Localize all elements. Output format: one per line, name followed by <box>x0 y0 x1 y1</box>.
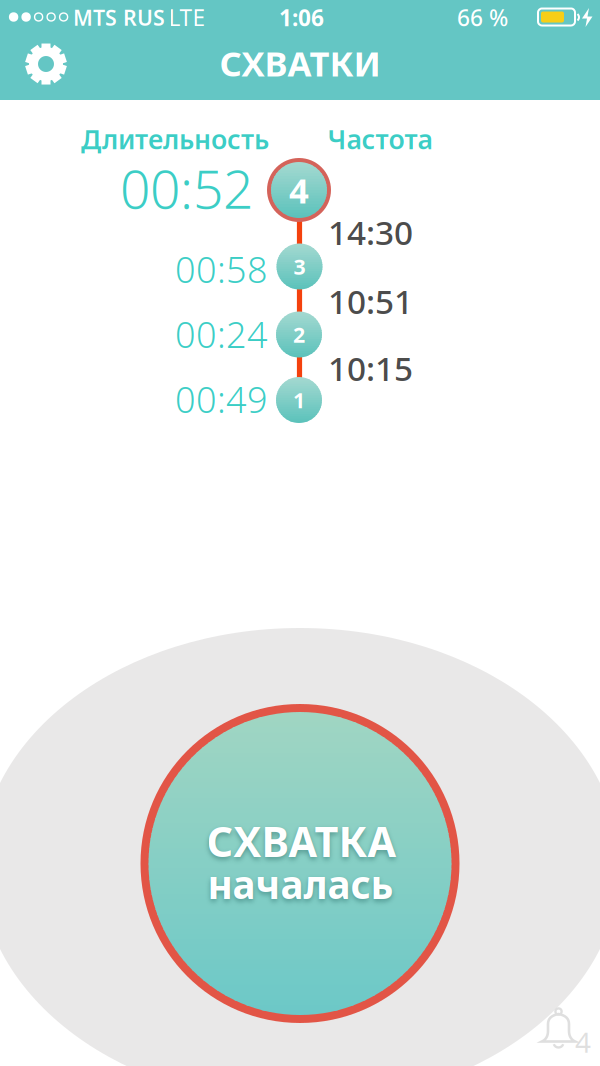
button[interactable]: Settings <box>16 34 76 94</box>
staticText: 14:30 <box>328 210 413 254</box>
staticText: Длительность <box>81 121 269 157</box>
staticText: 4 <box>575 1023 591 1061</box>
staticText: 10:51 <box>328 279 413 323</box>
staticText: 10:15 <box>328 346 413 390</box>
button[interactable]: СХВАТКА <box>140 704 459 1023</box>
staticText: 4 <box>289 167 309 213</box>
staticText: СХВАТКИ <box>219 40 380 86</box>
staticText: 1 <box>293 386 305 414</box>
staticText: 2 <box>293 320 305 349</box>
staticText: 00:49 <box>175 375 268 423</box>
staticText: 00:24 <box>175 310 268 358</box>
staticText: MTS RUS <box>73 3 165 32</box>
staticText: 1:06 <box>279 2 324 32</box>
staticText: 66 % <box>457 2 508 32</box>
staticText: 3 <box>293 252 305 281</box>
staticText: Частота <box>327 121 432 157</box>
staticText: LTE <box>168 2 205 32</box>
staticText: СХВАТКА <box>206 814 396 868</box>
staticText: началась <box>207 858 393 910</box>
staticText: 00:58 <box>175 245 268 293</box>
staticText: 00:52 <box>120 153 253 223</box>
